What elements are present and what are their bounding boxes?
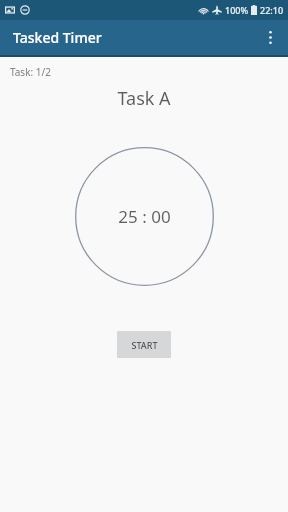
- staticText: START: [131, 339, 158, 351]
- button[interactable]: More options: [253, 20, 288, 55]
- staticText: Tasked Timer: [13, 28, 102, 47]
- button[interactable]: START: [117, 331, 171, 358]
- staticText: 25 : 00: [118, 205, 171, 228]
- staticText: Task: 1/2: [10, 65, 51, 79]
- staticText: Task A: [117, 86, 171, 111]
- staticText: 22:10: [260, 4, 284, 16]
- staticText: 100%: [225, 4, 249, 16]
